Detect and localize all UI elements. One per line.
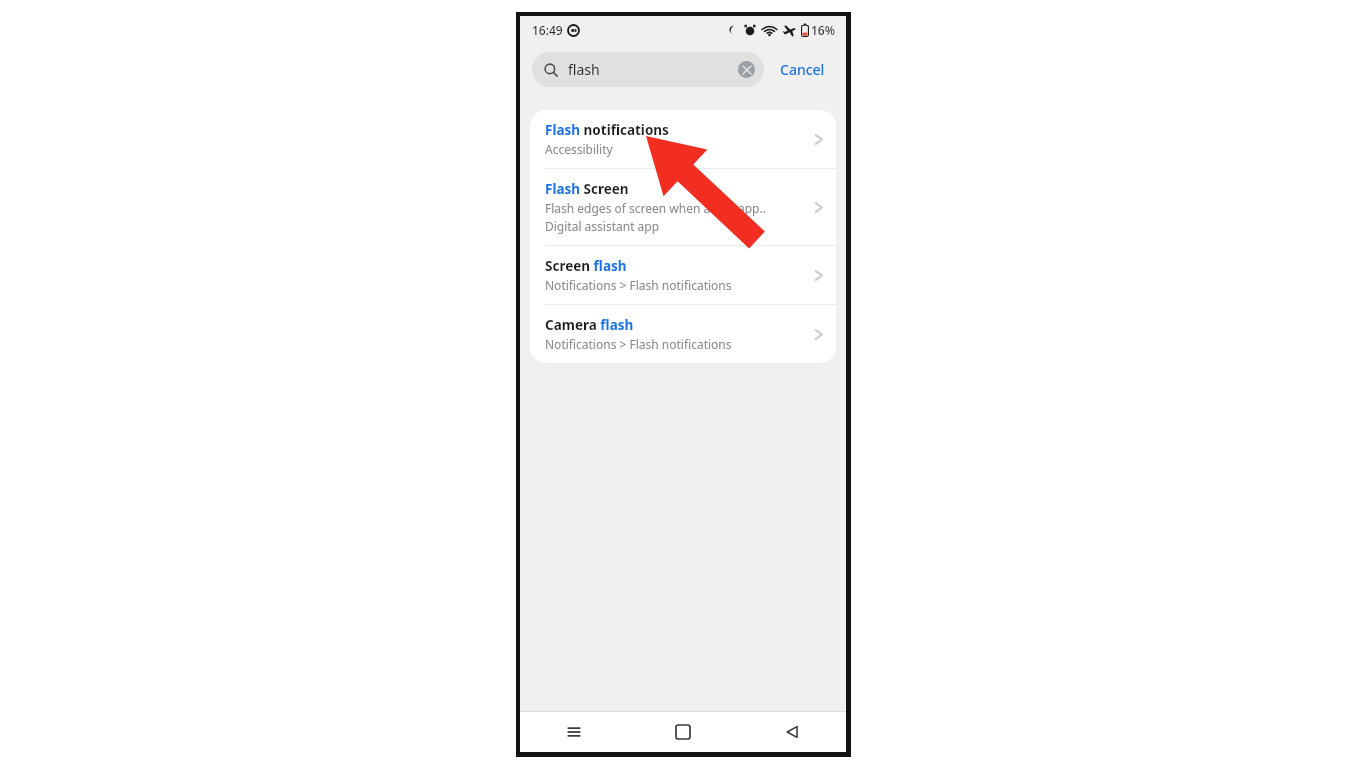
staticText: Digital assistant app [545,218,660,234]
staticText: 16% [811,22,835,38]
button[interactable]: Recent apps [520,712,628,752]
staticText: Notifications > Flash notifications [545,277,732,293]
button[interactable]: Cancel [776,54,829,85]
staticText: Camera flash [545,316,634,334]
button[interactable]: Screen flash [530,246,836,304]
staticText: flash [568,60,600,79]
staticText: Screen flash [545,257,627,275]
button[interactable]: Clear search [738,61,755,78]
staticText: Cancel [780,60,825,79]
button[interactable]: flash [532,52,764,87]
button[interactable]: Home [628,712,737,752]
staticText: 16:49 [532,22,563,38]
button[interactable]: Flash Screen [530,169,836,245]
button[interactable]: Flash notifications [530,110,836,168]
button[interactable]: Back [737,712,846,752]
staticText: Flash edges of screen when assist app.. [545,200,766,216]
button[interactable]: Camera flash [530,305,836,363]
staticText: Accessibility [545,141,613,157]
staticText: Flash notifications [545,121,669,139]
staticText: Notifications > Flash notifications [545,336,732,352]
staticText: Flash Screen [545,180,629,198]
